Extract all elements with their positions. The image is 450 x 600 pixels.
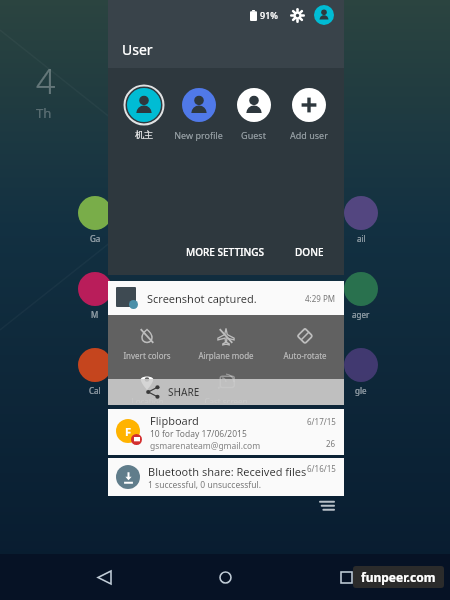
staticText: Ga <box>90 233 101 244</box>
button[interactable]: 机主 <box>116 82 171 142</box>
staticText: Screenshot captured. <box>147 291 257 306</box>
button[interactable]: F <box>108 409 344 455</box>
staticText: Cal <box>89 385 101 396</box>
staticText: Bluetooth share: Received files <box>148 464 307 479</box>
staticText: 4 <box>36 58 56 104</box>
staticText: User <box>122 40 153 59</box>
button[interactable]: Bluetooth share: Received files <box>108 458 344 496</box>
staticText: Guest <box>241 129 266 141</box>
staticText: Th <box>36 104 52 122</box>
button[interactable]: MORE SETTINGS <box>178 239 273 265</box>
staticText: SHARE <box>168 385 200 399</box>
button[interactable]: Location <box>108 369 186 405</box>
staticText: funpeer.com <box>361 569 436 585</box>
button[interactable]: Add user <box>281 82 336 143</box>
staticText: 26 <box>326 438 336 449</box>
staticText: ager <box>352 309 370 320</box>
staticText: 6/16/15 <box>307 463 336 474</box>
staticText: Invert colors <box>123 350 171 361</box>
button[interactable]: Screenshot captured. <box>108 281 344 315</box>
button[interactable]: DONE <box>287 239 332 265</box>
staticText: Flipboard <box>150 413 199 428</box>
staticText: Location <box>131 396 164 403</box>
button[interactable]: Cast screen <box>186 369 265 405</box>
button[interactable]: Back <box>87 560 121 594</box>
staticText: DONE <box>295 245 324 259</box>
button[interactable]: Airplane mode <box>186 323 265 363</box>
staticText: M <box>91 309 99 320</box>
staticText: F <box>125 424 132 439</box>
button[interactable]: Switch user <box>314 5 334 25</box>
staticText: gsmarenateam@gmail.com <box>150 440 261 452</box>
staticText: 10 for Today 17/06/2015 <box>150 428 247 440</box>
button[interactable]: Settings <box>288 6 306 24</box>
button[interactable]: Clear all notifications <box>318 497 336 515</box>
staticText: 6/17/15 <box>307 416 336 427</box>
button[interactable]: Guest <box>226 82 281 143</box>
button[interactable]: Auto-rotate <box>265 323 344 363</box>
button[interactable]: Home <box>208 560 242 594</box>
staticText: 4:29 PM <box>305 293 336 304</box>
staticText: Airplane mode <box>198 350 254 361</box>
staticText: Add user <box>290 129 328 141</box>
button[interactable]: New profile <box>171 82 226 143</box>
staticText: ail <box>357 233 366 244</box>
staticText: 91% <box>260 9 278 21</box>
staticText: Auto-rotate <box>283 350 327 361</box>
button[interactable]: SHARE <box>108 379 344 405</box>
staticText: New profile <box>174 129 223 141</box>
button[interactable]: Recents <box>329 560 363 594</box>
staticText: 1 successful, 0 unsuccessful. <box>148 479 262 491</box>
staticText: MORE SETTINGS <box>186 245 265 259</box>
staticText: 机主 <box>135 129 153 140</box>
button[interactable]: Invert colors <box>108 323 186 363</box>
staticText: gle <box>355 385 367 396</box>
